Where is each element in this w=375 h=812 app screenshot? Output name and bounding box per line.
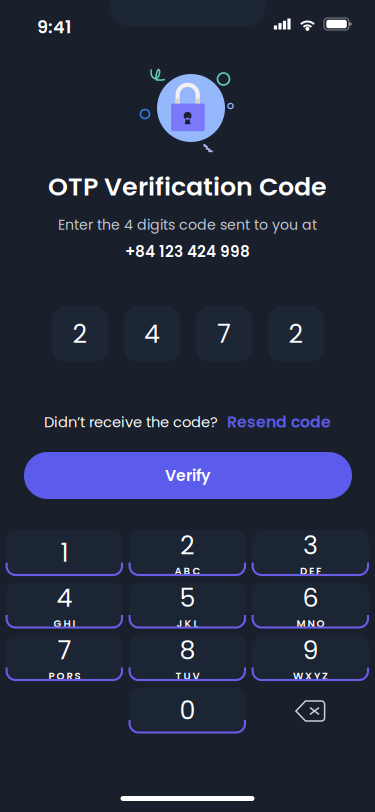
button[interactable]: 7: [196, 306, 252, 362]
staticText: D E F: [300, 564, 321, 578]
staticText: P Q R S: [48, 669, 80, 683]
staticText: Enter the 4 digits code sent to you at: [58, 215, 317, 235]
button[interactable]: Verify: [24, 452, 352, 499]
staticText: T U V: [175, 669, 199, 683]
staticText: OTP Verification Code: [48, 169, 327, 204]
button[interactable]: 3: [252, 530, 369, 577]
staticText: +84 123 424 998: [125, 241, 250, 262]
staticText: 8: [179, 633, 195, 668]
button[interactable]: 8: [129, 635, 246, 682]
staticText: 4: [56, 580, 72, 616]
button[interactable]: 2: [129, 530, 246, 577]
button[interactable]: 4: [124, 306, 180, 362]
staticText: Didn’t receive the code?: [44, 412, 218, 432]
staticText: Verify: [165, 464, 211, 486]
staticText: A B C: [174, 564, 200, 578]
button[interactable]: 7: [6, 635, 123, 682]
staticText: 2: [72, 316, 87, 352]
staticText: M N O: [296, 617, 324, 631]
staticText: 4: [144, 316, 160, 352]
button[interactable]: 2: [52, 306, 108, 362]
staticText: W X Y Z: [293, 669, 328, 683]
staticText: 0: [179, 693, 195, 728]
staticText: 2: [288, 316, 303, 352]
staticText: G H I: [53, 617, 75, 631]
button[interactable]: Resend code: [227, 411, 331, 433]
button[interactable]: 9: [252, 635, 369, 682]
button[interactable]: 5: [129, 582, 246, 629]
button[interactable]: 4: [6, 582, 123, 629]
button[interactable]: 0: [129, 687, 246, 734]
staticText: 2: [180, 528, 195, 563]
staticText: 7: [57, 633, 71, 668]
staticText: 1: [60, 535, 68, 571]
staticText: 9:41: [37, 15, 71, 39]
staticText: 9: [302, 633, 318, 668]
staticText: J K L: [176, 617, 198, 631]
staticText: 3: [303, 528, 318, 563]
button[interactable]: 1: [6, 530, 123, 577]
staticText: 6: [302, 580, 318, 616]
button[interactable]: 6: [252, 582, 369, 629]
staticText: 7: [217, 316, 231, 352]
button[interactable]: Delete: [252, 687, 369, 734]
staticText: 5: [179, 580, 195, 616]
staticText: Resend code: [227, 411, 331, 433]
button[interactable]: 2: [268, 306, 324, 362]
